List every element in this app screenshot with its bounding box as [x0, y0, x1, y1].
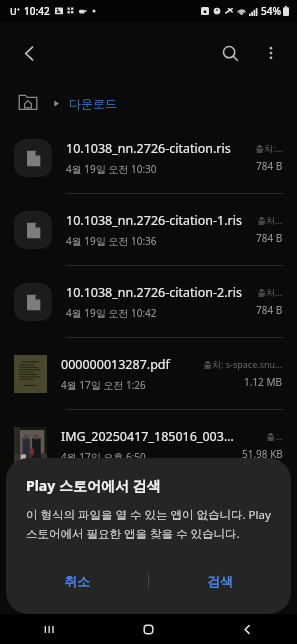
staticText: 출…: [266, 430, 283, 442]
staticText: 4월 19일 오전 10:30: [66, 162, 157, 176]
staticText: 54%: [261, 4, 281, 18]
staticText: 4월 19일 오전 10:42: [66, 306, 157, 320]
staticText: IMG_20250417_185016_003.jpg: [61, 428, 236, 445]
staticText: 000000013287.pdf: [61, 356, 170, 373]
button[interactable]: 10.1038_nn.2726-citation-2.ris: [0, 266, 297, 337]
button[interactable]: Home folder: [16, 91, 40, 115]
staticText: 출처: s-space.snu…: [203, 358, 283, 370]
staticText: 취소: [64, 573, 90, 589]
button[interactable]: IMG_20250417_185016_003.jpg: [0, 410, 297, 481]
staticText: 4월 19일 오전 10:36: [66, 234, 157, 248]
staticText: U⁺: [10, 5, 20, 17]
button[interactable]: Back: [8, 32, 50, 74]
button[interactable]: 검색: [149, 560, 291, 602]
staticText: 10.1038_nn.2726-citation.ris: [66, 140, 231, 157]
button[interactable]: 000000013287.pdf: [0, 338, 297, 409]
button[interactable]: 10.1038_nn.2726-citation.ris: [0, 122, 297, 193]
staticText: 1.12 MB: [244, 375, 283, 389]
staticText: 출처…: [257, 286, 283, 298]
staticText: 10.1038_nn.2726-citation-1.ris: [66, 212, 242, 229]
staticText: 출처:…: [255, 142, 283, 154]
button[interactable]: More options: [251, 33, 291, 73]
staticText: 이 형식의 파일을 열 수 있는 앱이 없습니다. Play 스토어에서 필요한…: [26, 507, 271, 542]
staticText: 51.98 KB: [242, 447, 283, 461]
staticText: Play 스토어에서 검색: [26, 476, 161, 495]
staticText: 출처…: [257, 214, 283, 226]
button[interactable]: Recent apps: [0, 614, 99, 644]
staticText: 4월 17일 오후 6:50: [61, 450, 146, 464]
staticText: 10:42: [24, 4, 50, 18]
button[interactable]: Back: [198, 614, 297, 644]
staticText: 10.1038_nn.2726-citation-2.ris: [66, 284, 242, 301]
button[interactable]: 다운로드: [69, 96, 117, 111]
button[interactable]: Home: [99, 614, 198, 644]
staticText: 784 B: [256, 303, 283, 317]
staticText: 784 B: [256, 231, 283, 245]
staticText: 다운로드: [69, 96, 117, 111]
button[interactable]: 취소: [6, 560, 148, 602]
button[interactable]: 10.1038_nn.2726-citation-1.ris: [0, 194, 297, 265]
button[interactable]: Search: [209, 32, 251, 74]
staticText: 검색: [207, 573, 233, 589]
staticText: 4월 17일 오전 1:26: [61, 378, 146, 392]
staticText: 784 B: [256, 159, 283, 173]
